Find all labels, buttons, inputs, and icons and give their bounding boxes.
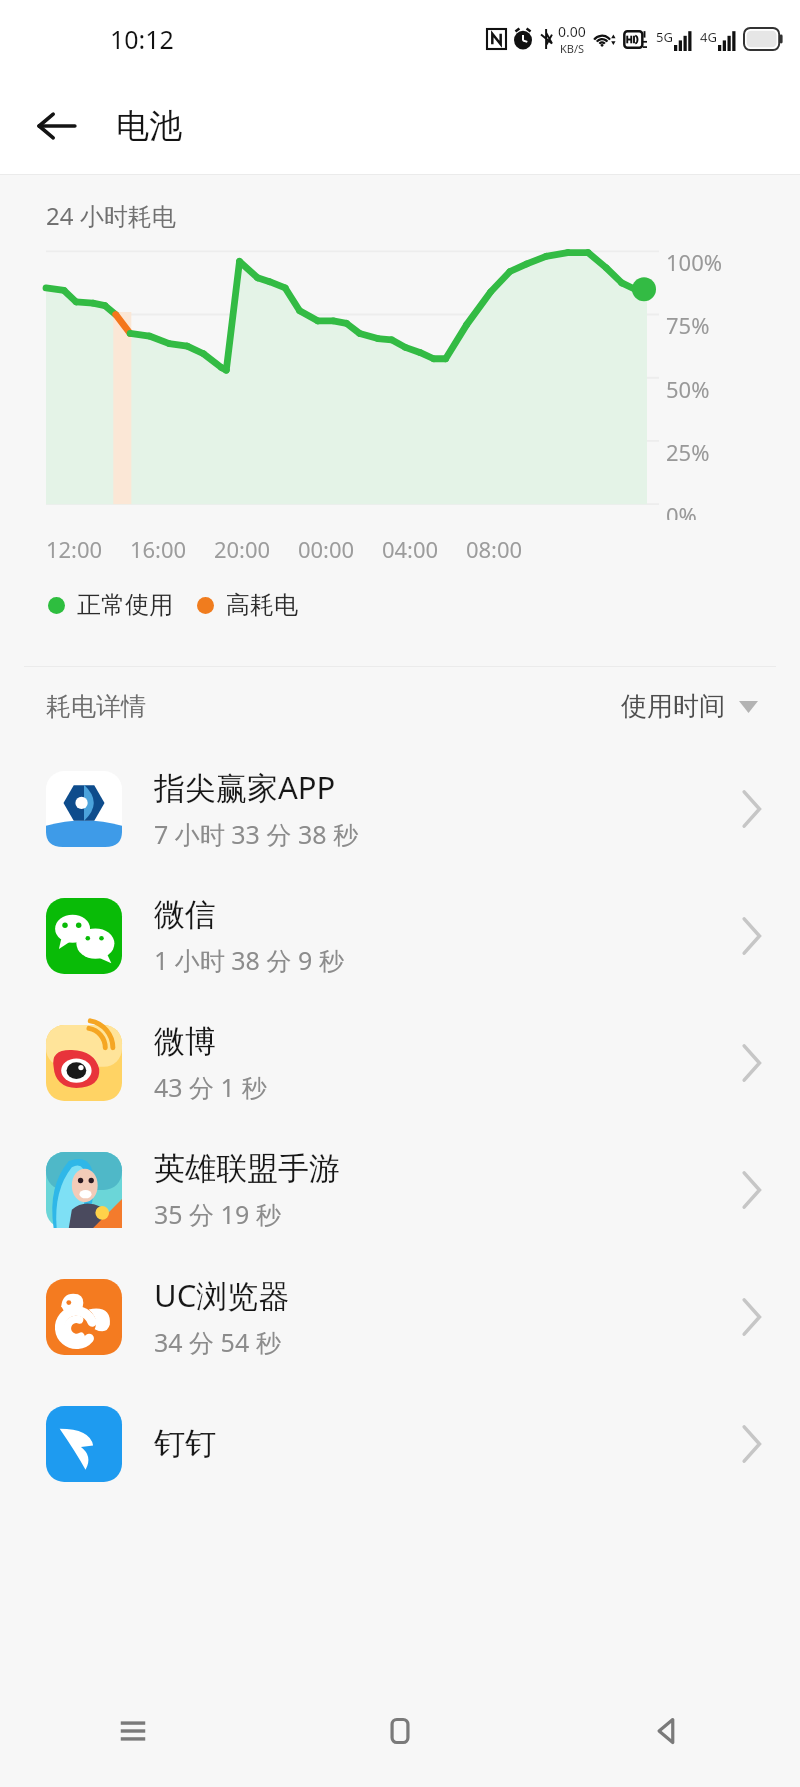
staticText: 04:00 (368, 534, 452, 564)
staticText: 75% (666, 310, 800, 340)
button[interactable]: 主屏幕 (266, 1675, 533, 1787)
button[interactable]: 返回 (533, 1675, 800, 1787)
staticText: 5G (656, 28, 673, 46)
button[interactable]: 返回 (28, 97, 86, 155)
button[interactable]: 微博 (0, 999, 800, 1126)
button[interactable]: 英雄联盟手游 (0, 1126, 800, 1253)
button[interactable]: 微信 (0, 872, 800, 999)
button[interactable]: 最近任务 (0, 1675, 266, 1787)
button[interactable]: UC浏览器 (0, 1253, 800, 1380)
staticText: 25% (666, 437, 800, 467)
staticText: 0% (666, 500, 800, 520)
staticText: 50% (666, 374, 800, 404)
staticText: 英雄联盟手游 (154, 1149, 340, 1188)
staticText: 微博 (154, 1022, 216, 1061)
staticText: 7 小时 33 分 38 秒 (154, 817, 359, 851)
staticText: KB/S (560, 41, 585, 56)
staticText: 0.00 (558, 22, 586, 41)
staticText: 耗电详情 (46, 691, 146, 722)
staticText: 100% (666, 247, 800, 277)
button[interactable]: 指尖赢家APP (0, 745, 800, 872)
staticText: 24 小时耗电 (46, 199, 176, 232)
staticText: 35 分 19 秒 (154, 1197, 281, 1231)
staticText: 34 分 54 秒 (154, 1325, 281, 1359)
staticText: 微信 (154, 895, 216, 934)
staticText: 16:00 (116, 534, 200, 564)
staticText: 43 分 1 秒 (154, 1070, 267, 1104)
staticText: 高耗电 (226, 590, 298, 620)
staticText: 4G (700, 28, 717, 46)
staticText: 10:12 (110, 22, 174, 56)
staticText: 使用时间 (621, 690, 725, 723)
staticText: 电池 (116, 105, 182, 147)
staticText: UC浏览器 (154, 1274, 290, 1316)
staticText: 12:00 (32, 534, 116, 564)
staticText: 20:00 (200, 534, 284, 564)
button[interactable]: 使用时间 (615, 682, 764, 731)
button[interactable]: 钉钉 (0, 1380, 800, 1507)
staticText: 08:00 (452, 534, 536, 564)
staticText: 钉钉 (154, 1424, 216, 1463)
staticText: 00:00 (284, 534, 368, 564)
staticText: 指尖赢家APP (154, 766, 336, 808)
staticText: 1 小时 38 分 9 秒 (154, 943, 344, 977)
staticText: 正常使用 (77, 590, 173, 620)
